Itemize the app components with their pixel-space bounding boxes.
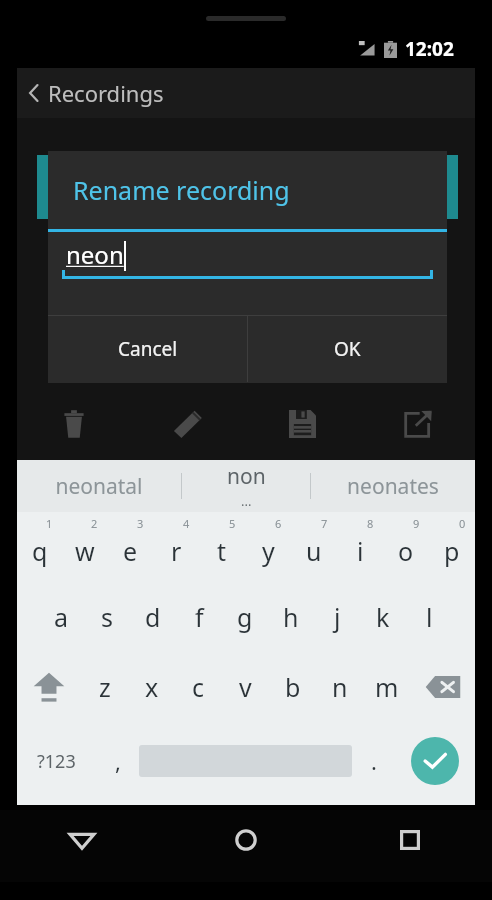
button[interactable]: d <box>130 582 176 652</box>
button[interactable]: 4 <box>153 512 199 582</box>
button[interactable]: Delete <box>17 388 131 460</box>
button[interactable]: Recent apps <box>328 816 492 864</box>
staticText: 1 <box>46 516 53 531</box>
button[interactable]: v <box>222 652 269 722</box>
staticText: 7 <box>321 516 328 531</box>
button[interactable]: non <box>182 460 310 512</box>
staticText: , <box>115 746 121 776</box>
staticText: neonatal <box>55 472 143 501</box>
staticText: x <box>145 670 159 704</box>
staticText: Cancel <box>118 336 178 362</box>
button[interactable]: 6 <box>245 512 291 582</box>
staticText: h <box>283 600 299 634</box>
staticText: c <box>192 670 205 704</box>
button[interactable]: s <box>84 582 130 652</box>
staticText: e <box>123 534 138 568</box>
staticText: u <box>306 534 322 568</box>
staticText: 2 <box>91 516 98 531</box>
staticText: y <box>262 534 275 568</box>
staticText: Recordings <box>48 78 164 108</box>
staticText: t <box>217 534 227 568</box>
button[interactable]: Space <box>139 722 352 800</box>
staticText: l <box>426 600 433 634</box>
button[interactable]: Recordings <box>23 78 168 108</box>
button[interactable]: neonatal <box>17 460 181 512</box>
button[interactable]: neonates <box>311 460 475 512</box>
staticText: non <box>227 462 266 491</box>
button[interactable]: Back <box>0 816 164 864</box>
button[interactable]: 5 <box>199 512 245 582</box>
staticText: neonates <box>347 472 439 501</box>
staticText: d <box>145 600 161 634</box>
staticText: ?123 <box>37 749 76 774</box>
button[interactable]: 0 <box>429 512 475 582</box>
button[interactable]: Shift <box>17 652 81 722</box>
button[interactable]: Home <box>164 816 328 864</box>
button[interactable]: OK <box>248 316 447 382</box>
staticText: Rename recording <box>73 173 290 207</box>
staticText: neon <box>66 238 124 271</box>
staticText: r <box>171 534 182 568</box>
button[interactable]: f <box>176 582 222 652</box>
button[interactable]: j <box>314 582 360 652</box>
button[interactable]: Backspace <box>410 652 475 722</box>
button[interactable]: 8 <box>337 512 383 582</box>
staticText: i <box>357 534 364 568</box>
button[interactable]: 9 <box>383 512 429 582</box>
staticText: p <box>444 534 460 568</box>
button[interactable]: l <box>406 582 452 652</box>
staticText: q <box>32 534 48 568</box>
staticText: 6 <box>275 516 282 531</box>
staticText: 4 <box>183 516 190 531</box>
button[interactable]: n <box>316 652 363 722</box>
button[interactable]: h <box>268 582 314 652</box>
button[interactable]: 1 <box>17 512 62 582</box>
staticText: 0 <box>459 516 466 531</box>
staticText: b <box>285 670 301 704</box>
button[interactable]: Cancel <box>48 316 247 382</box>
staticText: g <box>237 600 253 634</box>
staticText: 12:02 <box>405 36 454 62</box>
staticText: 5 <box>229 516 236 531</box>
button[interactable]: 3 <box>107 512 153 582</box>
button[interactable]: z <box>81 652 128 722</box>
staticText: z <box>99 670 111 704</box>
staticText: s <box>101 600 113 634</box>
staticText: OK <box>334 336 361 362</box>
staticText: 9 <box>413 516 420 531</box>
button[interactable]: g <box>222 582 268 652</box>
staticText: ... <box>241 492 252 510</box>
button[interactable]: Edit <box>131 388 245 460</box>
staticText: o <box>398 534 414 568</box>
staticText: f <box>195 600 204 634</box>
staticText: . <box>371 746 377 776</box>
staticText: m <box>375 670 399 704</box>
staticText: n <box>332 670 348 704</box>
button[interactable]: m <box>363 652 410 722</box>
button[interactable]: a <box>39 582 84 652</box>
button[interactable]: c <box>175 652 222 722</box>
button[interactable]: k <box>360 582 406 652</box>
staticText: a <box>54 600 69 634</box>
button[interactable]: b <box>269 652 316 722</box>
staticText: 3 <box>137 516 144 531</box>
button[interactable]: x <box>128 652 175 722</box>
button[interactable]: Enter <box>395 722 475 800</box>
button[interactable]: 2 <box>62 512 107 582</box>
button[interactable]: Save <box>245 388 360 460</box>
staticText: w <box>75 534 95 568</box>
staticText: k <box>376 600 390 634</box>
button[interactable]: . <box>352 722 395 800</box>
staticText: v <box>239 670 252 704</box>
button[interactable]: 7 <box>291 512 337 582</box>
button[interactable]: , <box>96 722 139 800</box>
button[interactable]: Share <box>360 388 475 460</box>
button[interactable]: ?123 <box>17 722 96 800</box>
staticText: 8 <box>367 516 374 531</box>
staticText: j <box>334 600 341 634</box>
